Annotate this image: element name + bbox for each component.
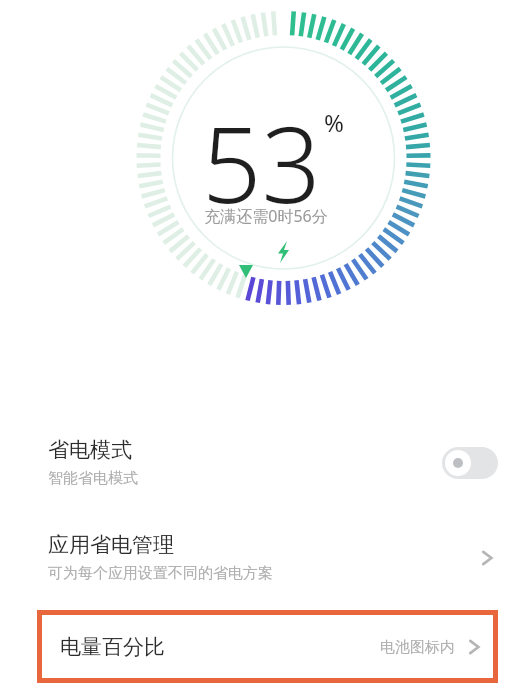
staticText: 可为每个应用设置不同的省电方案 bbox=[48, 564, 273, 583]
staticText: 电量百分比 bbox=[60, 634, 380, 660]
staticText: 电池图标内 bbox=[380, 638, 455, 657]
button[interactable]: 省电模式开关 bbox=[442, 447, 498, 479]
staticText: % bbox=[324, 106, 344, 139]
staticText: 53 bbox=[202, 92, 321, 234]
staticText: 智能省电模式 bbox=[48, 469, 138, 488]
button[interactable]: 电量百分比 bbox=[42, 615, 493, 678]
staticText: 应用省电管理 bbox=[48, 532, 174, 558]
button[interactable]: 应用省电管理 bbox=[0, 510, 532, 605]
staticText: 省电模式 bbox=[48, 437, 132, 463]
button[interactable]: 省电模式 bbox=[0, 415, 532, 510]
staticText: 充满还需0时56分 bbox=[204, 205, 328, 227]
